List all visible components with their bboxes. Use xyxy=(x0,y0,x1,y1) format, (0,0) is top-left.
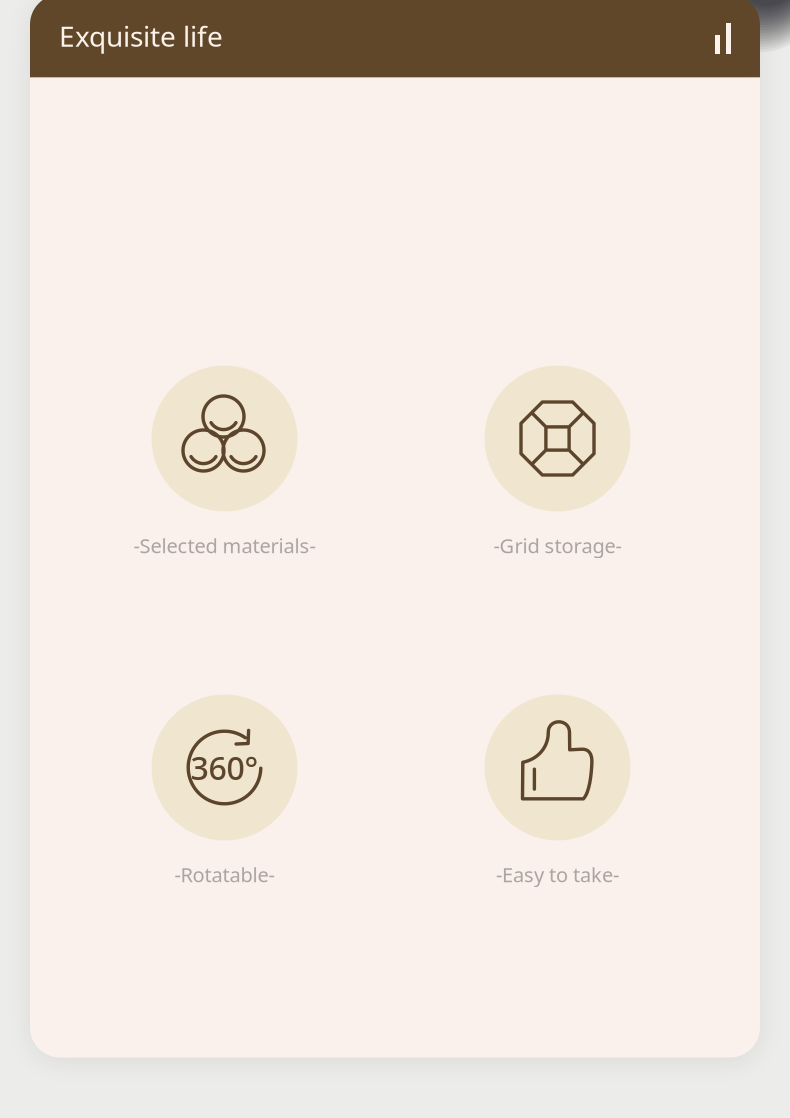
button[interactable]: -Grid storage- xyxy=(407,365,707,565)
staticText: Exquisite life xyxy=(59,17,223,55)
staticText: -Grid storage- xyxy=(493,532,621,559)
staticText: -Easy to take- xyxy=(496,861,619,888)
staticText: -Selected materials- xyxy=(133,532,315,559)
button[interactable]: -Selected materials- xyxy=(74,365,374,565)
button[interactable]: -Easy to take- xyxy=(407,694,707,894)
staticText: -Rotatable- xyxy=(174,861,274,888)
button[interactable]: 360° xyxy=(74,694,374,894)
button[interactable]: Signal strength xyxy=(687,14,731,58)
staticText: 360° xyxy=(190,746,258,789)
